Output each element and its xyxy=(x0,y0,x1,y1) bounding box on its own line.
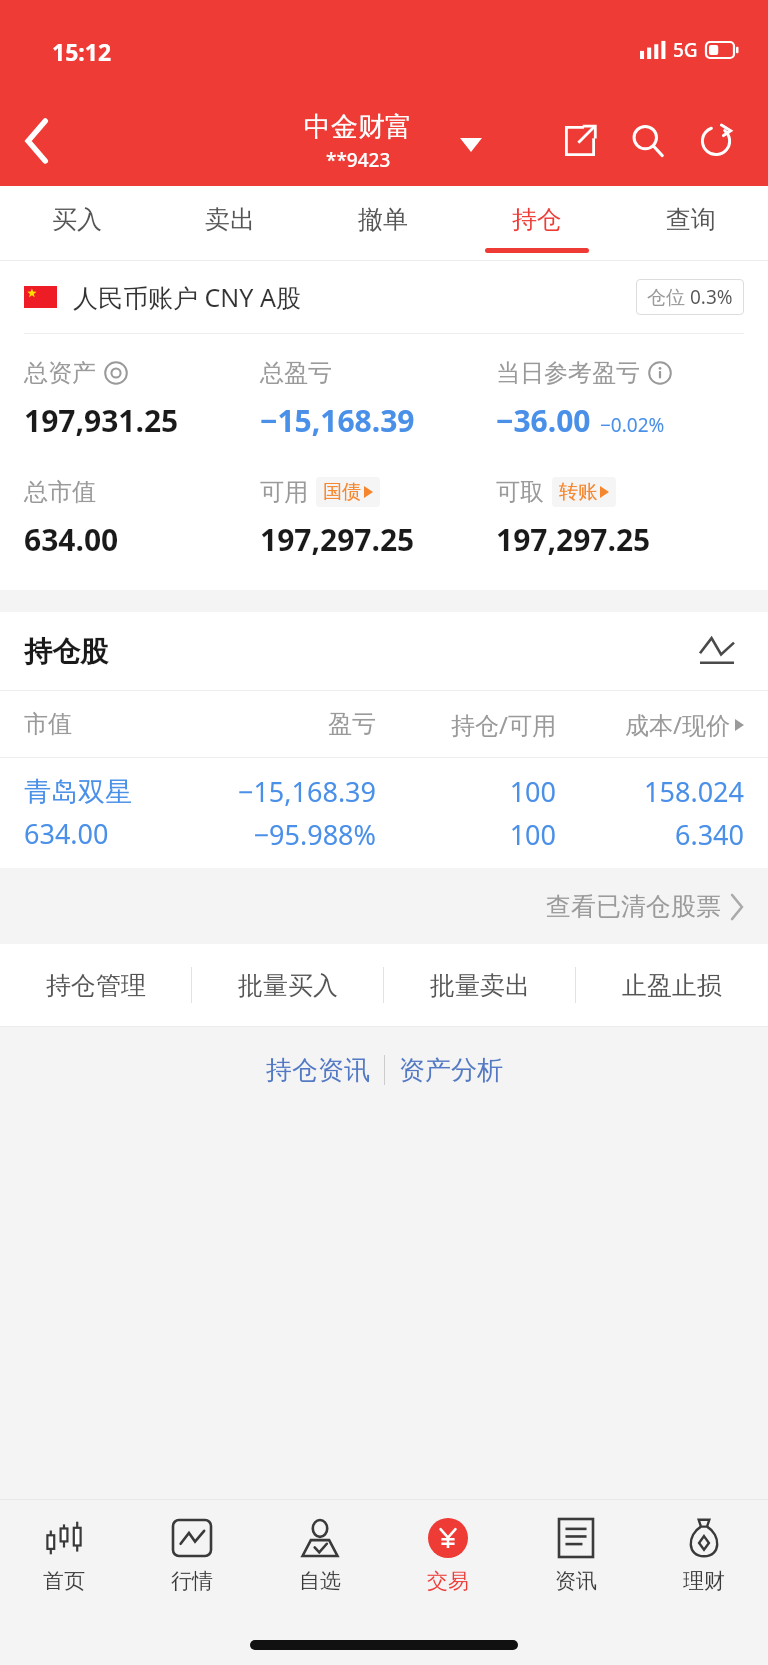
staticText: 总盈亏 xyxy=(260,358,332,388)
staticText: 止盈止损 xyxy=(622,970,722,1001)
staticText: 查询 xyxy=(666,204,716,235)
staticText: −36.00 xyxy=(496,400,591,441)
button[interactable]: Refresh xyxy=(682,107,750,175)
staticText: 市值 xyxy=(24,709,173,739)
button[interactable]: 青岛双星 xyxy=(0,758,768,868)
staticText: 158.024 xyxy=(644,773,744,810)
staticText: 持仓管理 xyxy=(46,970,146,1001)
staticText: 15:12 xyxy=(52,36,112,67)
staticText: 行情 xyxy=(171,1568,213,1594)
staticText: 资讯 xyxy=(555,1568,597,1594)
staticText: 转账 xyxy=(559,480,597,504)
staticText: 理财 xyxy=(683,1568,725,1594)
button[interactable]: 行情 xyxy=(128,1499,256,1619)
staticText: 国债 xyxy=(323,480,361,504)
staticText: 持仓股 xyxy=(24,634,108,669)
staticText: 持仓 xyxy=(512,204,562,235)
button[interactable]: 撤单 xyxy=(306,186,460,261)
staticText: 197,297.25 xyxy=(260,519,415,560)
button[interactable]: 自选 xyxy=(256,1499,384,1619)
button[interactable]: 批量卖出 xyxy=(384,944,576,1026)
staticText: 197,297.25 xyxy=(496,519,651,560)
staticText: 持仓/可用 xyxy=(376,708,556,741)
button[interactable]: 批量买入 xyxy=(192,944,384,1026)
button[interactable]: 止盈止损 xyxy=(576,944,768,1026)
staticText: 总市值 xyxy=(24,477,96,507)
staticText: 可用 xyxy=(260,477,308,507)
staticText: 资产分析 xyxy=(399,1054,503,1087)
staticText: 634.00 xyxy=(24,519,119,560)
staticText: 100 xyxy=(509,816,556,853)
button[interactable]: 持仓资讯 xyxy=(252,1048,384,1093)
button[interactable]: Share xyxy=(546,107,614,175)
button[interactable]: 买入 xyxy=(0,186,153,261)
button[interactable]: 资讯 xyxy=(512,1499,640,1619)
staticText: 6.340 xyxy=(674,816,744,853)
staticText: 仓位 xyxy=(647,284,690,310)
staticText: 撤单 xyxy=(358,204,408,235)
staticText: **9423 xyxy=(326,147,391,173)
staticText: 总资产 xyxy=(24,358,96,388)
button[interactable]: 资产分析 xyxy=(385,1048,517,1093)
button[interactable]: 持仓 xyxy=(460,186,614,261)
button[interactable]: 理财 xyxy=(640,1499,768,1619)
button[interactable]: Back xyxy=(0,103,76,179)
staticText: 5G xyxy=(673,37,698,63)
staticText: 盈亏 xyxy=(173,709,376,739)
button[interactable]: Chart view xyxy=(690,624,744,678)
staticText: 634.00 xyxy=(24,815,109,852)
button[interactable]: 查看已清仓股票 xyxy=(0,868,768,944)
staticText: −95.988% xyxy=(253,816,376,853)
staticText: −15,168.39 xyxy=(237,773,376,810)
button[interactable]: Toggle total assets visibility xyxy=(24,358,128,388)
staticText: 持仓资讯 xyxy=(266,1054,370,1087)
staticText: 买入 xyxy=(52,204,102,235)
staticText: 0.3% xyxy=(690,284,733,310)
button[interactable]: 转账 xyxy=(552,477,616,507)
button[interactable]: 查询 xyxy=(614,186,768,261)
button[interactable]: 人民币账户 CNY A股 xyxy=(24,261,744,333)
staticText: 可取 xyxy=(496,477,544,507)
staticText: 人民币账户 CNY A股 xyxy=(73,280,301,314)
staticText: 批量买入 xyxy=(238,970,338,1001)
staticText: 查看已清仓股票 xyxy=(546,891,721,922)
button[interactable]: 首页 xyxy=(0,1499,128,1619)
staticText: −15,168.39 xyxy=(260,400,415,441)
button[interactable]: 中金财富 xyxy=(304,110,412,173)
staticText: 首页 xyxy=(43,1568,85,1594)
staticText: 交易 xyxy=(427,1568,469,1594)
staticText: 批量卖出 xyxy=(430,970,530,1001)
staticText: 100 xyxy=(509,773,556,810)
staticText: 197,931.25 xyxy=(24,400,179,441)
button[interactable]: 交易 xyxy=(384,1499,512,1619)
staticText: 成本/现价 xyxy=(625,708,730,741)
button[interactable]: 卖出 xyxy=(153,186,306,261)
staticText: 当日参考盈亏 xyxy=(496,358,640,388)
staticText: 青岛双星 xyxy=(24,775,132,809)
staticText: −0.02% xyxy=(600,412,665,438)
button[interactable]: 持仓管理 xyxy=(0,944,192,1026)
button[interactable]: 国债 xyxy=(316,477,380,507)
staticText: 中金财富 xyxy=(304,110,412,144)
button[interactable]: Search xyxy=(614,107,682,175)
staticText: 自选 xyxy=(299,1568,341,1594)
staticText: 卖出 xyxy=(205,204,255,235)
